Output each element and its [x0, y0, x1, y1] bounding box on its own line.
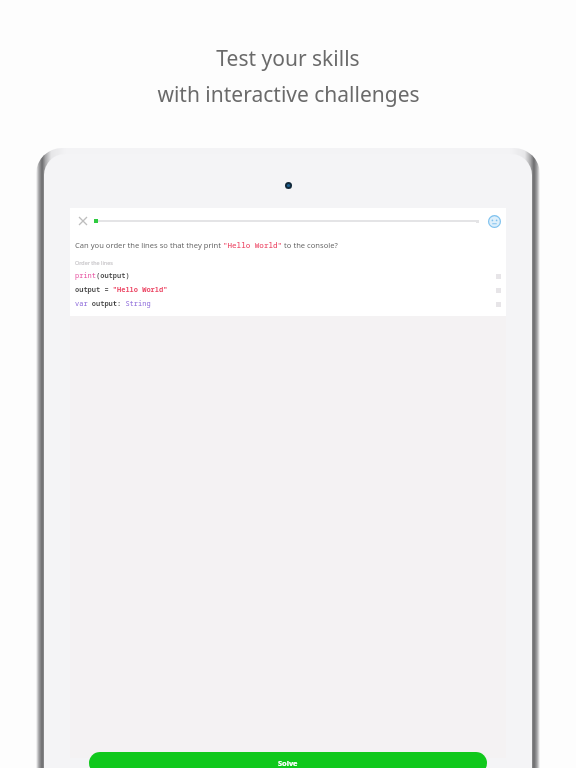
staticText: with interactive challenges	[157, 80, 420, 109]
staticText: print(output)	[75, 271, 496, 281]
button[interactable]: Solve	[89, 752, 487, 768]
staticText: output = "Hello World"	[75, 285, 496, 295]
staticText: Test your skills	[216, 44, 360, 73]
staticText: Can you order the lines so that they pri…	[75, 240, 338, 250]
button[interactable]: Close	[75, 213, 91, 229]
button[interactable]: print(output)	[70, 269, 506, 283]
button[interactable]: var output: String	[70, 297, 506, 311]
staticText: var output: String	[75, 299, 496, 309]
staticText: Order the lines	[75, 259, 113, 266]
staticText: Solve	[278, 758, 298, 768]
button[interactable]: Hint	[485, 212, 503, 230]
button[interactable]: output = "Hello World"	[70, 283, 506, 297]
